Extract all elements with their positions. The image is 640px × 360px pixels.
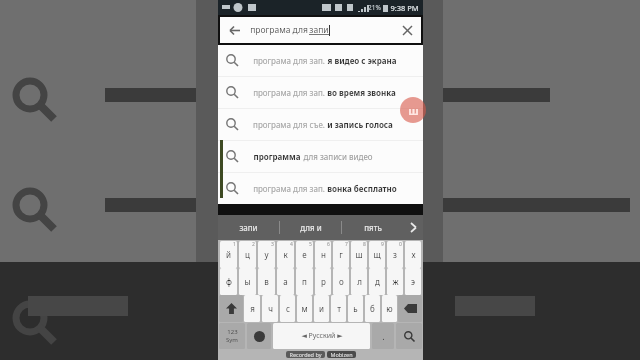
staticText: х — [411, 249, 416, 260]
staticText: программа — [253, 151, 301, 162]
button[interactable]: 4 — [277, 241, 294, 268]
button[interactable]: Back — [226, 22, 242, 38]
button[interactable]: 8 — [351, 241, 367, 268]
staticText: к — [283, 249, 288, 260]
button[interactable]: в — [258, 268, 275, 295]
button[interactable]: э — [405, 268, 421, 295]
staticText: ш — [408, 103, 419, 118]
button[interactable]: б — [365, 295, 380, 322]
button[interactable]: More suggestions — [403, 215, 423, 240]
staticText: во время звонка — [325, 87, 396, 98]
button[interactable]: програма для зап. — [218, 77, 423, 108]
button[interactable]: Search — [396, 323, 422, 349]
staticText: й — [226, 249, 231, 260]
staticText: програма для — [249, 24, 309, 36]
staticText: 4 — [290, 241, 293, 248]
staticText: р — [321, 276, 326, 287]
staticText: я видео с экрана — [325, 55, 397, 66]
button[interactable]: ч — [262, 295, 278, 322]
button[interactable]: ю — [382, 295, 397, 322]
staticText: для записи видео — [301, 151, 373, 162]
button[interactable]: 5 — [296, 241, 313, 268]
staticText: л — [357, 276, 362, 287]
staticText: а — [283, 276, 288, 287]
staticText: Sym — [226, 336, 238, 344]
staticText: ◄ Русский ► — [301, 331, 343, 341]
staticText: 2 — [252, 241, 255, 248]
button[interactable]: 2 — [239, 241, 256, 268]
staticText: в — [264, 276, 269, 287]
staticText: вонка бесплатно — [325, 183, 397, 194]
staticText: Mobizen — [330, 351, 353, 358]
button[interactable]: с — [280, 295, 295, 322]
button[interactable]: Numbers and symbols — [219, 323, 245, 349]
button[interactable]: ◄ Русский ► — [273, 323, 370, 349]
staticText: ж — [392, 276, 399, 287]
button[interactable]: Emoji — [247, 323, 271, 349]
staticText: 3 — [271, 241, 274, 248]
staticText: запи — [239, 222, 258, 233]
staticText: г — [339, 249, 343, 260]
staticText: з — [393, 249, 397, 260]
staticText: д — [375, 276, 380, 287]
staticText: 0 — [399, 241, 402, 248]
staticText: програма для зап. — [253, 87, 325, 98]
button[interactable]: п — [296, 268, 313, 295]
staticText: я — [250, 303, 255, 314]
button[interactable]: ы — [239, 268, 256, 295]
button[interactable]: Clear — [399, 22, 415, 38]
staticText: 5 — [309, 241, 312, 248]
button[interactable]: ь — [348, 295, 363, 322]
button[interactable]: т — [331, 295, 346, 322]
button[interactable]: 9 — [369, 241, 385, 268]
staticText: и запись голоса — [325, 119, 393, 130]
button[interactable]: и — [314, 295, 329, 322]
staticText: у — [264, 249, 269, 260]
button[interactable]: 1 — [220, 241, 237, 268]
staticText: 8 — [363, 241, 366, 248]
button[interactable]: 3 — [258, 241, 275, 268]
staticText: пять — [364, 222, 382, 233]
button[interactable]: програма для зап. — [218, 45, 423, 76]
staticText: 6 — [327, 241, 330, 248]
button[interactable]: Shift — [219, 295, 243, 322]
button[interactable]: пять — [342, 215, 403, 240]
button[interactable]: Back — [220, 17, 421, 43]
staticText: Recorded by — [289, 351, 322, 358]
button[interactable]: о — [333, 268, 349, 295]
staticText: для и — [300, 222, 322, 233]
staticText: т — [337, 303, 341, 314]
staticText: м — [301, 303, 308, 314]
staticText: щ — [373, 249, 381, 260]
staticText: програма для зап. — [253, 55, 325, 66]
staticText: 1 — [233, 241, 236, 248]
staticText: н — [321, 249, 326, 260]
button[interactable]: х — [405, 241, 421, 268]
button[interactable]: Backspace — [398, 295, 422, 322]
staticText: ц — [245, 249, 250, 260]
button[interactable]: л — [351, 268, 367, 295]
button[interactable]: 7 — [333, 241, 349, 268]
button[interactable]: запи — [218, 215, 279, 240]
button[interactable]: 6 — [315, 241, 331, 268]
button[interactable]: а — [277, 268, 294, 295]
staticText: и — [319, 303, 324, 314]
staticText: . — [382, 330, 385, 342]
button[interactable]: програма для зап. — [218, 173, 423, 204]
button[interactable]: 0 — [387, 241, 403, 268]
button[interactable]: програма для съе. — [218, 109, 423, 140]
button[interactable]: ф — [220, 268, 237, 295]
button[interactable]: ж — [387, 268, 403, 295]
button[interactable]: я — [244, 295, 260, 322]
button[interactable]: Period — [372, 323, 394, 349]
button[interactable]: м — [297, 295, 312, 322]
staticText: ч — [268, 303, 273, 314]
button[interactable]: для и — [280, 215, 341, 240]
button[interactable]: р — [315, 268, 331, 295]
staticText: п — [302, 276, 307, 287]
staticText: о — [339, 276, 344, 287]
button[interactable]: д — [369, 268, 385, 295]
staticText: ш — [355, 249, 363, 260]
staticText: 21% — [368, 3, 381, 12]
button[interactable]: программа — [218, 141, 423, 172]
